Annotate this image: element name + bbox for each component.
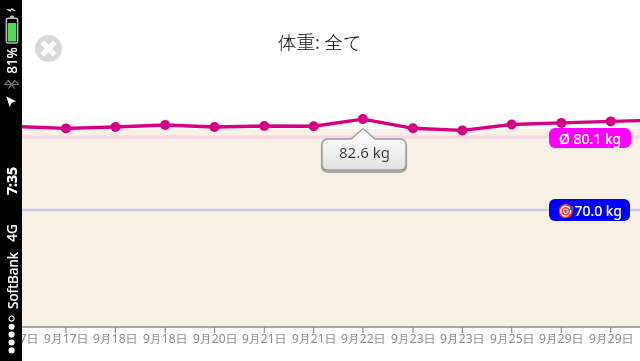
staticText: 4G (3, 224, 21, 242)
staticText: 9月23日 (391, 330, 436, 346)
staticText: 9月20日 (193, 330, 238, 346)
staticText: 体重: 全て (278, 29, 363, 54)
staticText: 7:35 (2, 167, 21, 195)
staticText: 9月22日 (341, 330, 386, 346)
staticText: 9月18日 (143, 330, 188, 346)
staticText: 9月18日 (93, 330, 138, 346)
staticText: 🎯70.0 kg (557, 201, 622, 220)
staticText: 9月29日 (539, 330, 584, 346)
staticText: 81% (3, 47, 21, 74)
staticText: 9月21日 (242, 330, 287, 346)
button[interactable]: Close (35, 35, 62, 62)
button[interactable]: 🎯70.0 kg (549, 199, 630, 221)
button[interactable]: 82.6 kg (321, 127, 407, 171)
staticText: 9月25日 (490, 330, 535, 346)
staticText: 9月17日 (44, 330, 89, 346)
staticText: 9月23日 (440, 330, 485, 346)
button[interactable]: Ø 80.1 kg (549, 128, 631, 148)
staticText: 9月21日 (292, 330, 337, 346)
staticText: Ø 80.1 kg (559, 129, 622, 148)
staticText: SoftBank (4, 252, 22, 309)
staticText: 9月29日 (589, 330, 634, 346)
staticText: 9月17日 (0, 330, 39, 346)
staticText: 82.6 kg (339, 142, 390, 162)
